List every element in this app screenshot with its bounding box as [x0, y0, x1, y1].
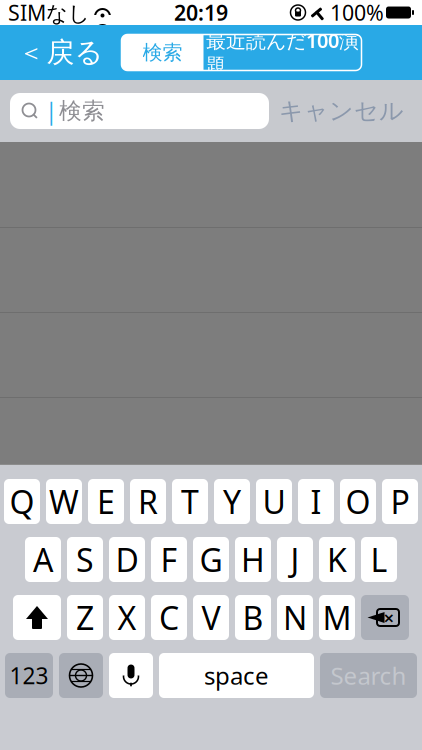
- staticText: S: [76, 538, 94, 581]
- staticText: |: [45, 96, 57, 126]
- staticText: 123: [9, 660, 48, 690]
- button[interactable]: S: [67, 537, 103, 582]
- button[interactable]: X: [109, 595, 145, 640]
- staticText: K: [327, 538, 347, 581]
- button[interactable]: Dictation: [109, 653, 153, 698]
- staticText: 検索: [59, 97, 105, 125]
- button[interactable]: V: [193, 595, 229, 640]
- button[interactable]: O: [340, 479, 376, 524]
- button[interactable]: J: [277, 537, 313, 582]
- staticText: J: [290, 538, 299, 581]
- button[interactable]: H: [235, 537, 271, 582]
- staticText: Y: [223, 480, 241, 523]
- staticText: L: [370, 538, 387, 581]
- staticText: ＜: [18, 37, 43, 68]
- staticText: SIMなし: [8, 0, 90, 27]
- staticText: 戻る: [46, 35, 103, 70]
- button[interactable]: B: [235, 595, 271, 640]
- button[interactable]: I: [298, 479, 334, 524]
- staticText: キャンセル: [279, 96, 404, 126]
- staticText: 20:19: [174, 0, 228, 27]
- staticText: 検索: [142, 40, 182, 65]
- button[interactable]: キャンセル: [269, 91, 414, 131]
- button[interactable]: 最近読んだ100演題: [203, 34, 361, 70]
- button[interactable]: Q: [4, 479, 40, 524]
- staticText: C: [159, 596, 179, 639]
- staticText: I: [310, 480, 321, 523]
- staticText: O: [345, 480, 370, 523]
- staticText: T: [181, 480, 199, 523]
- button[interactable]: M: [319, 595, 355, 640]
- button[interactable]: N: [277, 595, 313, 640]
- button[interactable]: A: [25, 537, 61, 582]
- staticText: E: [97, 480, 115, 523]
- button[interactable]: Shift: [13, 595, 61, 640]
- staticText: Search: [330, 660, 406, 691]
- button[interactable]: space: [159, 653, 314, 698]
- staticText: 最近読んだ100演題: [206, 27, 359, 78]
- staticText: G: [199, 538, 222, 581]
- staticText: W: [49, 480, 79, 523]
- staticText: Z: [76, 596, 94, 639]
- staticText: N: [283, 596, 307, 639]
- staticText: F: [160, 538, 177, 581]
- button[interactable]: K: [319, 537, 355, 582]
- staticText: V: [201, 596, 220, 639]
- staticText: A: [33, 538, 53, 581]
- button[interactable]: 検索: [121, 34, 203, 70]
- button[interactable]: W: [46, 479, 82, 524]
- staticText: U: [262, 480, 285, 523]
- button[interactable]: F: [151, 537, 187, 582]
- button[interactable]: G: [193, 537, 229, 582]
- button[interactable]: Y: [214, 479, 250, 524]
- staticText: space: [204, 660, 269, 691]
- staticText: M: [322, 596, 351, 639]
- staticText: R: [138, 480, 158, 523]
- button[interactable]: P: [382, 479, 418, 524]
- button[interactable]: Next keyboard: [59, 653, 103, 698]
- button[interactable]: D: [109, 537, 145, 582]
- button[interactable]: U: [256, 479, 292, 524]
- button[interactable]: C: [151, 595, 187, 640]
- button[interactable]: L: [361, 537, 397, 582]
- button[interactable]: Search: [320, 653, 417, 698]
- staticText: H: [241, 538, 265, 581]
- staticText: X: [117, 596, 136, 639]
- button[interactable]: R: [130, 479, 166, 524]
- button[interactable]: T: [172, 479, 208, 524]
- staticText: B: [242, 596, 263, 639]
- staticText: ×: [383, 605, 394, 630]
- button[interactable]: Delete: [361, 595, 409, 640]
- button[interactable]: 123: [5, 653, 53, 698]
- staticText: [306, 5, 309, 20]
- button[interactable]: ＜: [8, 30, 113, 74]
- button[interactable]: Z: [67, 595, 103, 640]
- staticText: 100%: [324, 0, 384, 27]
- staticText: Q: [9, 480, 34, 523]
- staticText: P: [390, 480, 409, 523]
- staticText: D: [115, 538, 138, 581]
- button[interactable]: E: [88, 479, 124, 524]
